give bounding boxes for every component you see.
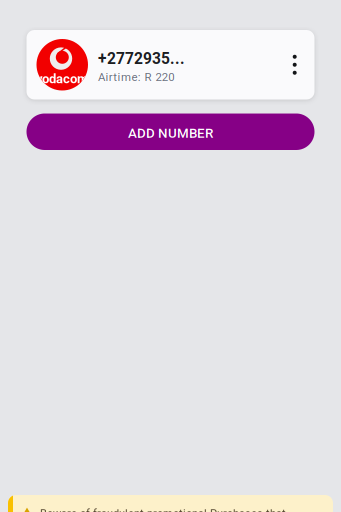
staticText: Beware of fraudulent promotional Purchas… [40,507,286,512]
staticText: Airtime: R 220 [98,70,174,84]
staticText: vodacom [36,71,88,86]
button[interactable]: ADD NUMBER [26,113,314,150]
button[interactable]: More options [277,43,313,87]
staticText: ADD NUMBER [128,125,213,141]
staticText: +2772935... [98,50,185,68]
